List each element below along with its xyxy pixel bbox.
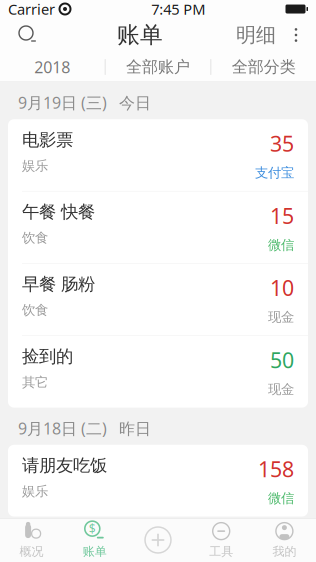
staticText: 饮食 xyxy=(22,230,48,246)
button[interactable]: 搜索 xyxy=(6,19,50,51)
staticText: 捡到的 xyxy=(22,346,73,367)
staticText: 微信 xyxy=(268,490,294,507)
button[interactable]: $ xyxy=(63,518,126,562)
staticText: 9月19日 (三) 今日 xyxy=(18,92,151,113)
staticText: 2018 xyxy=(34,56,70,78)
button[interactable]: 工具 xyxy=(190,518,253,562)
staticText: 现金 xyxy=(268,381,294,398)
staticText: 微信 xyxy=(268,237,294,253)
button[interactable]: 全部账户 xyxy=(106,53,210,81)
staticText: 9月18日 (二) 昨日 xyxy=(18,418,151,439)
staticText: 早餐 肠粉 xyxy=(22,274,95,295)
staticText: 全部分类 xyxy=(232,57,296,77)
button[interactable]: 明细 xyxy=(230,19,282,51)
staticText: 饮食 xyxy=(22,302,48,318)
staticText: 10 xyxy=(270,274,294,302)
button[interactable]: 我的 xyxy=(253,518,316,562)
button[interactable]: 全部分类 xyxy=(211,53,316,81)
staticText: 现金 xyxy=(268,309,294,325)
staticText: 15 xyxy=(270,201,294,230)
staticText: 概况 xyxy=(20,544,44,559)
staticText: 明细 xyxy=(236,23,276,47)
button[interactable]: 2018 xyxy=(0,53,105,81)
staticText: 其它 xyxy=(22,374,48,391)
staticText: 娱乐 xyxy=(22,157,48,174)
button[interactable]: 电影票 xyxy=(8,119,308,191)
button[interactable]: 捡到的 xyxy=(8,336,308,408)
staticText: 工具 xyxy=(209,544,233,559)
staticText: 7:45 PM xyxy=(151,0,205,19)
staticText: 158 xyxy=(258,455,294,483)
button[interactable]: 早餐 肠粉 xyxy=(8,264,308,336)
staticText: 50 xyxy=(270,346,294,374)
button[interactable]: 更多 xyxy=(282,19,310,51)
staticText: 请朋友吃饭 xyxy=(22,455,107,476)
staticText: Carrier xyxy=(8,0,55,19)
staticText: 支付宝 xyxy=(255,165,294,181)
button[interactable]: 新增 xyxy=(126,518,190,562)
button[interactable]: 午餐 快餐 xyxy=(8,191,308,264)
staticText: 账单 xyxy=(117,21,163,49)
staticText: 9月16日 (日) xyxy=(18,526,107,548)
staticText: 娱乐 xyxy=(22,483,48,499)
staticText: 我的 xyxy=(272,544,296,559)
staticText: 35 xyxy=(270,129,294,157)
staticText: 午餐 快餐 xyxy=(22,201,95,223)
button[interactable]: 请朋友吃饭 xyxy=(8,445,308,516)
staticText: 账单 xyxy=(83,544,107,559)
staticText: $ xyxy=(89,521,96,537)
button[interactable]: 早餐 包子 xyxy=(8,554,308,562)
button[interactable]: 概况 xyxy=(0,518,63,562)
staticText: 电影票 xyxy=(22,129,73,150)
staticText: 全部账户 xyxy=(126,57,190,77)
